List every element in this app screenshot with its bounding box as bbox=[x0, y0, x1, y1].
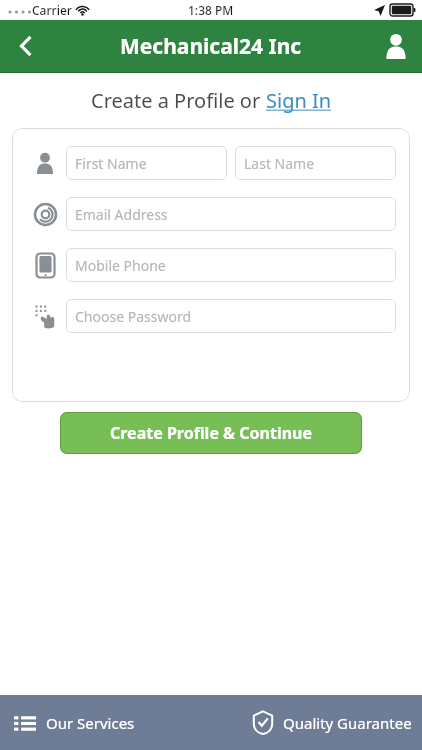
staticText: 1:38 PM bbox=[188, 2, 234, 18]
staticText: Create a Profile or bbox=[91, 87, 266, 114]
staticText: Our Services bbox=[46, 713, 135, 733]
button[interactable]: Create Profile & Continue bbox=[60, 412, 362, 454]
button[interactable]: Sign In bbox=[266, 87, 332, 114]
staticText: First Name bbox=[75, 154, 147, 173]
staticText: Quality Guarantee bbox=[283, 713, 412, 733]
button[interactable]: Our Services bbox=[0, 705, 149, 741]
staticText: Last Name bbox=[244, 154, 315, 173]
button[interactable]: Last Name bbox=[235, 146, 396, 180]
button[interactable]: Profile bbox=[370, 20, 422, 72]
button[interactable]: Email Address bbox=[66, 197, 396, 231]
button[interactable]: First Name bbox=[66, 146, 227, 180]
staticText: Choose Password bbox=[75, 307, 192, 326]
staticText: Mobile Phone bbox=[75, 256, 166, 275]
staticText: Create Profile & Continue bbox=[110, 422, 313, 444]
button[interactable]: Choose Password bbox=[66, 299, 396, 333]
button[interactable]: Back bbox=[0, 20, 52, 72]
button[interactable]: Mobile Phone bbox=[66, 248, 396, 282]
staticText: Sign In bbox=[266, 87, 332, 114]
staticText: Email Address bbox=[75, 205, 168, 224]
staticText: Carrier bbox=[32, 2, 72, 18]
staticText: Mechanical24 Inc bbox=[120, 32, 302, 61]
button[interactable]: Quality Guarantee bbox=[239, 703, 422, 742]
